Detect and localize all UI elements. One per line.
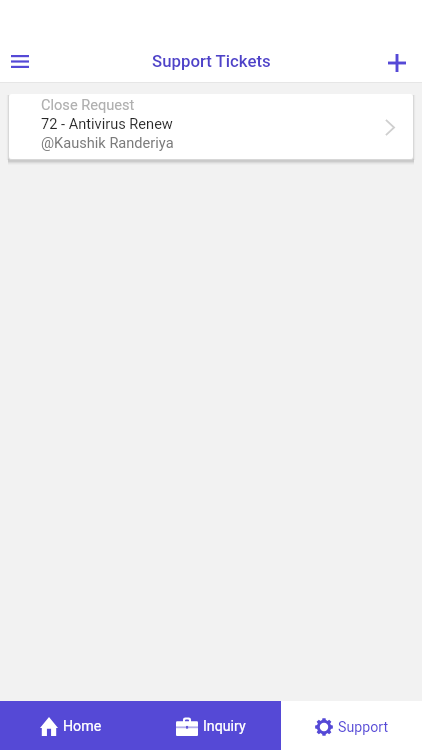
button[interactable]: Inquiry [140, 701, 281, 750]
staticText: Support [338, 719, 389, 736]
button[interactable]: Support [281, 701, 422, 750]
button[interactable]: Menu [0, 33, 40, 89]
staticText: 72 - Antivirus Renew [41, 115, 173, 132]
staticText: Inquiry [203, 718, 246, 735]
button[interactable]: Close Request [9, 94, 413, 159]
staticText: Home [63, 718, 102, 735]
staticText: Close Request [41, 96, 135, 113]
button[interactable]: Add ticket [372, 33, 422, 89]
button[interactable]: Home [0, 701, 140, 750]
staticText: Support Tickets [152, 51, 271, 71]
staticText: @Kaushik Randeriya [41, 134, 174, 151]
